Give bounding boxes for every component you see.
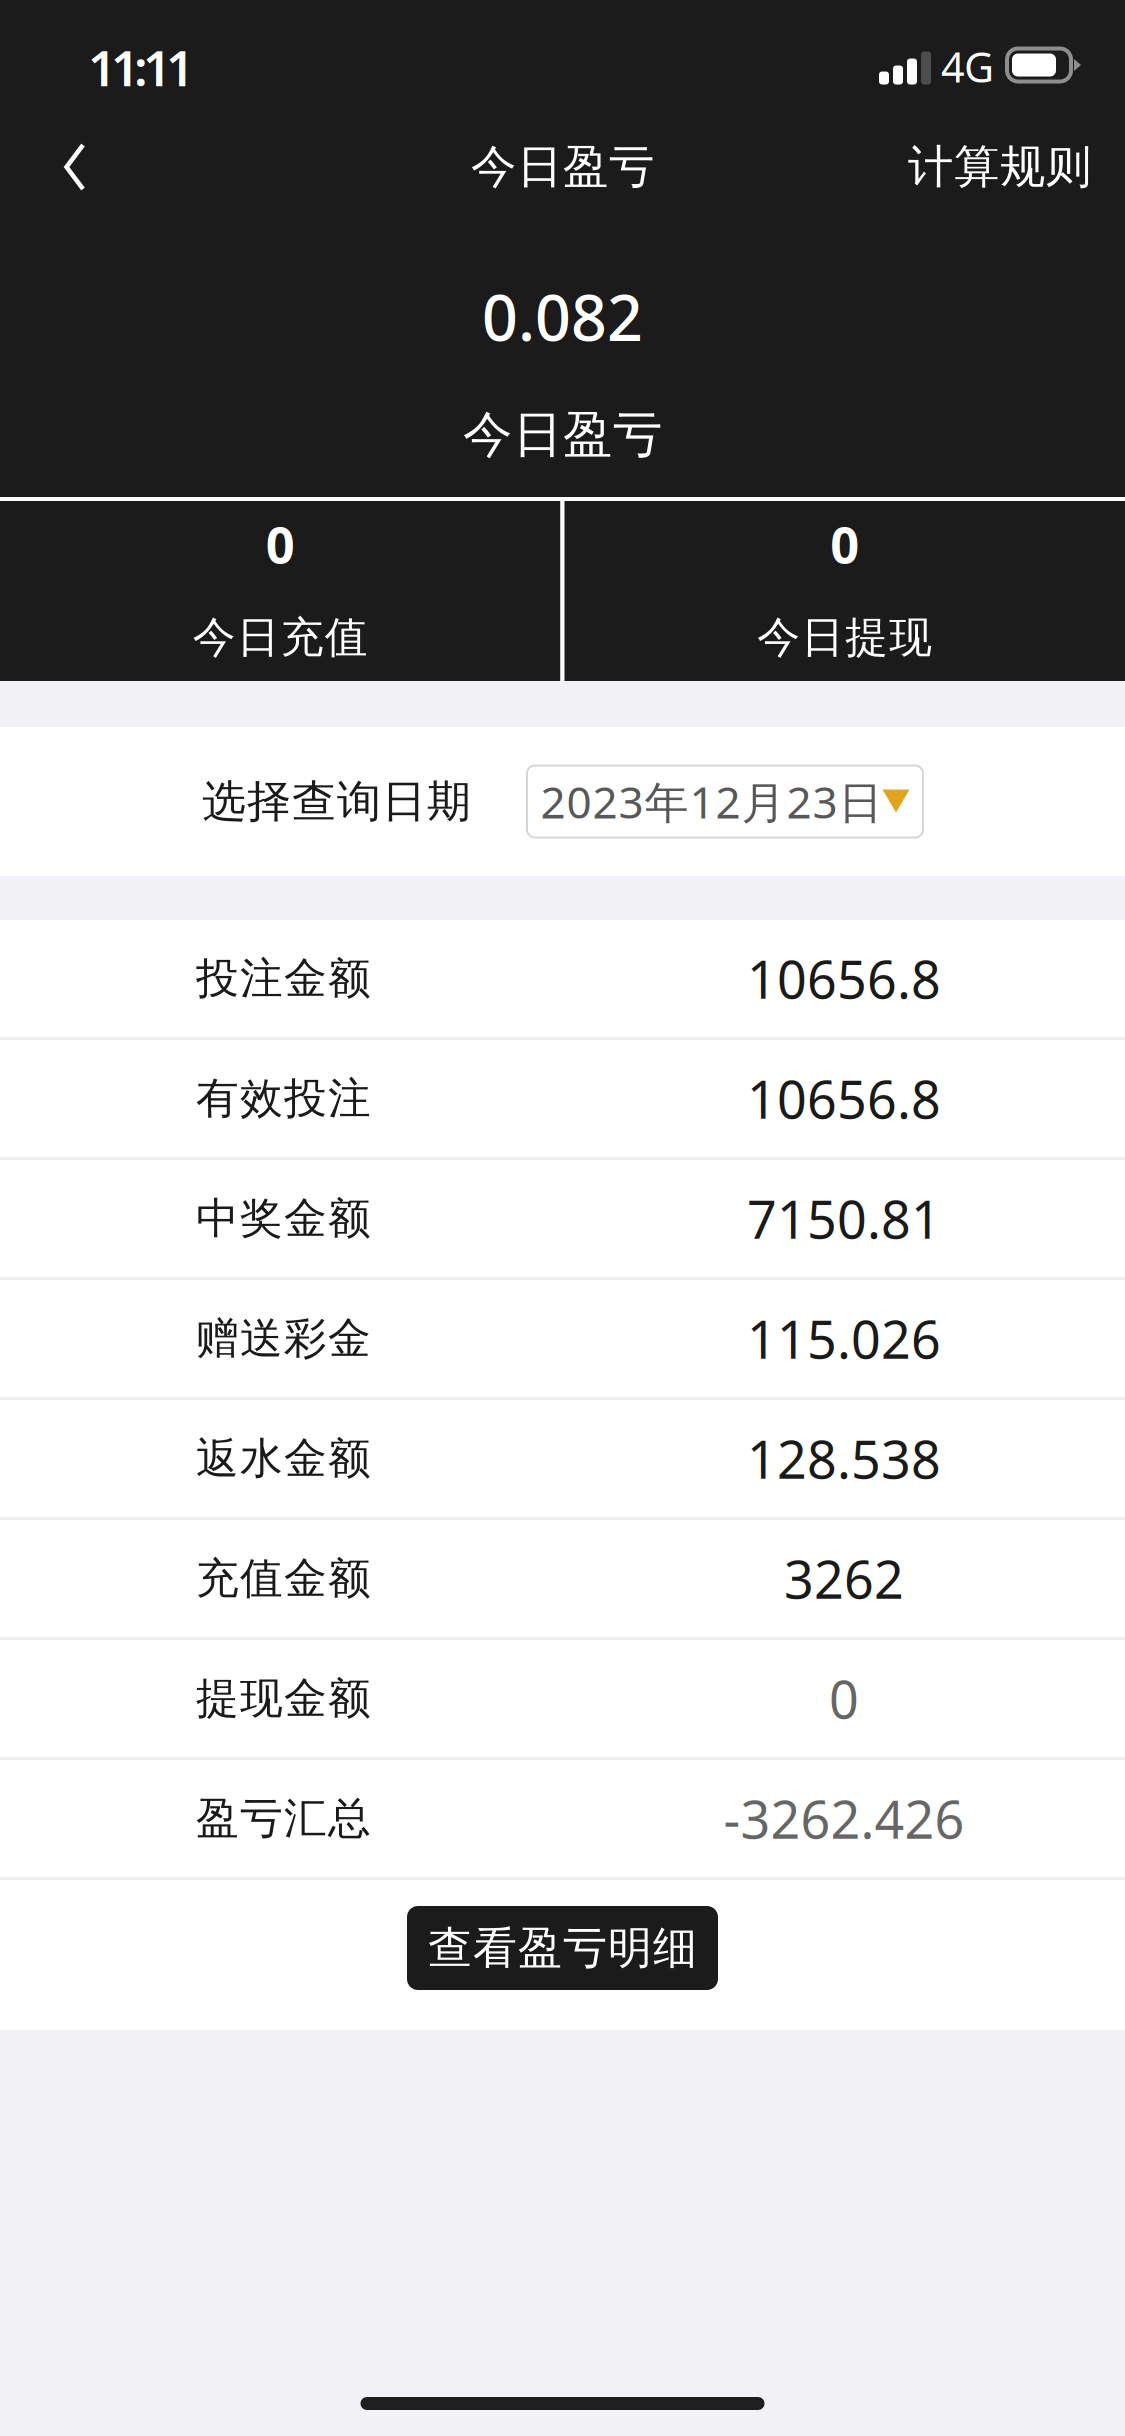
- staticText: 选择查询日期: [202, 774, 471, 828]
- staticText: 提现金额: [196, 1672, 371, 1725]
- button[interactable]: 0: [0, 501, 560, 681]
- staticText: 11:11: [88, 34, 194, 100]
- staticText: 4G: [941, 39, 994, 94]
- staticText: 今日盈亏: [471, 139, 654, 195]
- staticText: 计算规则: [908, 139, 1091, 195]
- staticText: 赠送彩金: [196, 1312, 371, 1365]
- staticText: 0: [830, 510, 859, 577]
- staticText: 盈亏汇总: [196, 1792, 371, 1845]
- staticText: 115.026: [747, 1304, 941, 1373]
- button[interactable]: 2023年12月23日: [471, 765, 923, 837]
- staticText: 128.538: [747, 1424, 941, 1493]
- staticText: 今日充值: [193, 611, 368, 664]
- button[interactable]: Back: [0, 118, 119, 216]
- staticText: 返水金额: [196, 1432, 371, 1485]
- staticText: 有效投注: [196, 1072, 371, 1125]
- staticText: 中奖金额: [196, 1192, 371, 1245]
- staticText: 10656.8: [747, 1064, 941, 1133]
- staticText: -3262.426: [723, 1784, 964, 1853]
- staticText: 3262: [784, 1544, 904, 1613]
- staticText: 0: [829, 1664, 859, 1733]
- staticText: 10656.8: [747, 944, 941, 1013]
- staticText: 今日提现: [757, 611, 932, 664]
- staticText: 今日盈亏: [463, 404, 662, 465]
- staticText: 0: [266, 510, 295, 577]
- button[interactable]: 计算规则: [908, 118, 1125, 216]
- button[interactable]: 查看盈亏明细: [407, 1906, 718, 1990]
- staticText: 2023年12月23日: [540, 772, 882, 831]
- staticText: 投注金额: [196, 952, 371, 1005]
- staticText: 7150.81: [747, 1184, 941, 1253]
- staticText: 查看盈亏明细: [428, 1921, 697, 1975]
- staticText: 充值金额: [196, 1552, 371, 1605]
- staticText: 0.082: [482, 275, 643, 358]
- button[interactable]: 0: [564, 501, 1125, 681]
